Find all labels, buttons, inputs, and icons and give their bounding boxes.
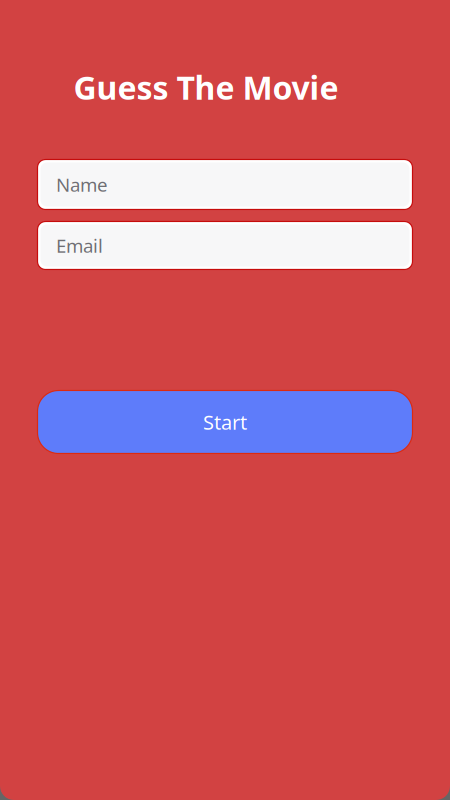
staticText: Name <box>56 172 108 197</box>
staticText: Email <box>56 233 103 258</box>
button[interactable]: Start <box>0 390 450 453</box>
button[interactable]: Name <box>37 159 412 209</box>
staticText: Guess The Movie <box>73 66 338 108</box>
staticText: Start <box>203 409 247 435</box>
button[interactable]: Email <box>37 221 412 269</box>
